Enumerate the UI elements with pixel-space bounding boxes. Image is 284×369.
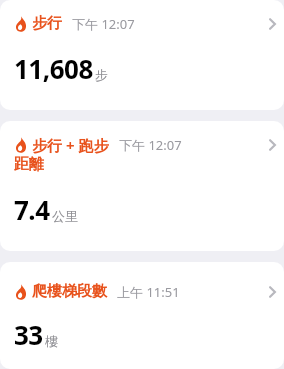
- staticText: 33: [14, 317, 43, 352]
- button[interactable]: 步行: [0, 0, 284, 110]
- staticText: 步行: [32, 14, 62, 33]
- staticText: 爬樓梯段數: [32, 282, 107, 301]
- staticText: 樓: [45, 333, 58, 349]
- staticText: 距離: [14, 155, 44, 174]
- staticText: 7.4: [14, 192, 50, 227]
- staticText: 步行 + 跑步: [32, 135, 109, 155]
- staticText: 下午 12:07: [72, 15, 135, 33]
- staticText: 下午 12:07: [119, 136, 182, 154]
- staticText: 公里: [52, 208, 78, 224]
- button[interactable]: 步行 + 跑步: [0, 121, 284, 251]
- staticText: 步: [95, 67, 108, 83]
- button[interactable]: 爬樓梯段數: [0, 262, 284, 369]
- staticText: 上午 11:51: [117, 283, 180, 301]
- staticText: 11,608: [14, 51, 93, 86]
